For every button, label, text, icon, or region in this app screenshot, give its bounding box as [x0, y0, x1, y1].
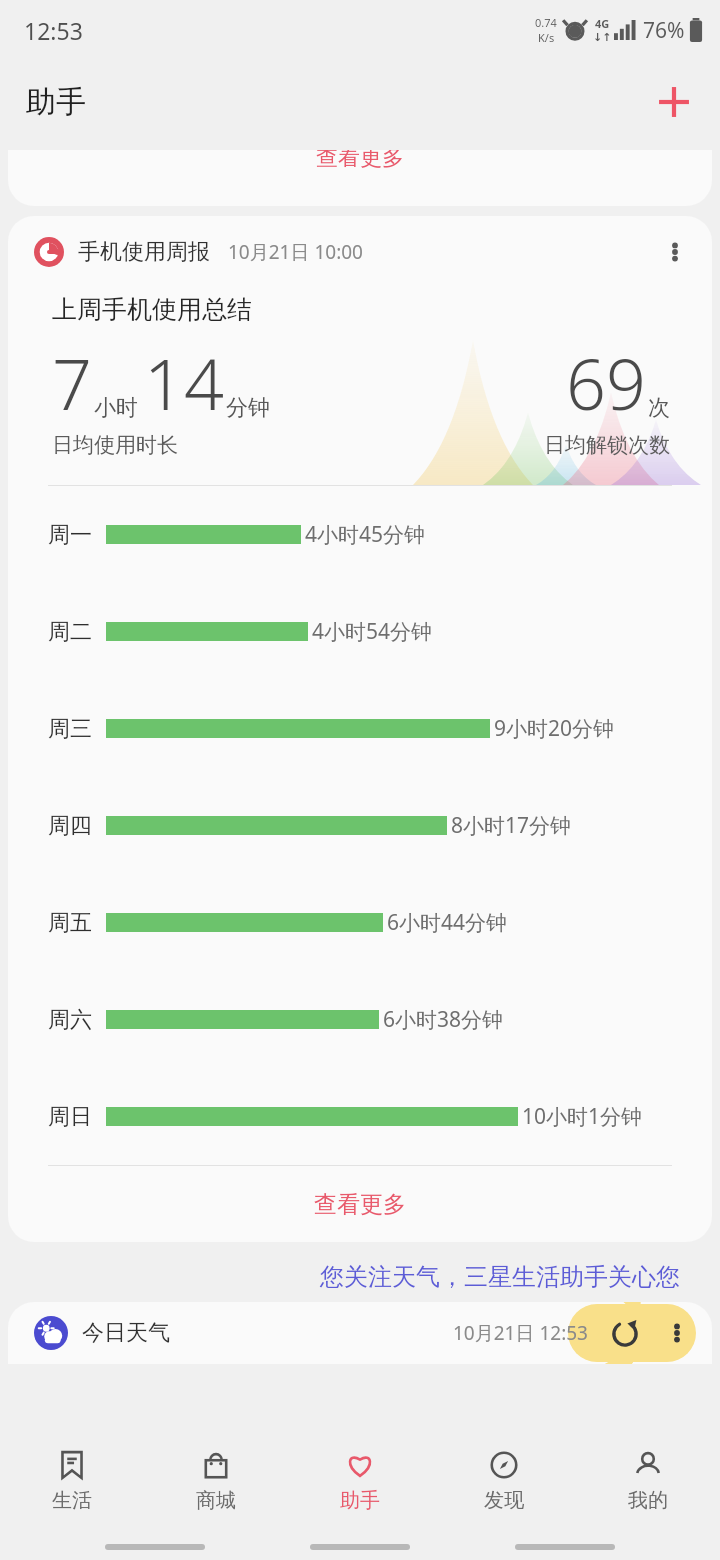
staticText: 发现	[484, 1488, 524, 1513]
button[interactable]: 您关注天气，三星生活助手关心您	[0, 1262, 720, 1292]
button[interactable]: 今日天气	[8, 1302, 712, 1364]
staticText: 上周手机使用总结	[52, 294, 252, 325]
staticText: 8小时17分钟	[451, 811, 572, 840]
staticText: 周四	[48, 812, 92, 840]
staticText: K/s	[538, 30, 555, 45]
button[interactable]: 发现	[432, 1426, 576, 1534]
staticText: 周六	[48, 1006, 92, 1034]
staticText: 12:53	[24, 15, 83, 46]
staticText: 周二	[48, 618, 92, 646]
button[interactable]: 生活	[0, 1426, 144, 1534]
staticText: 9小时20分钟	[494, 714, 615, 743]
button[interactable]: 助手	[288, 1426, 432, 1534]
staticText: 我的	[628, 1488, 668, 1513]
staticText: 日均使用时长	[52, 432, 178, 458]
staticText: 助手	[26, 83, 86, 121]
staticText: 69	[566, 335, 646, 430]
staticText: 周三	[48, 715, 92, 743]
button[interactable]: 更多选项	[652, 229, 698, 275]
button[interactable]: 添加	[650, 78, 698, 126]
staticText: 10小时1分钟	[522, 1102, 643, 1131]
staticText: 商城	[196, 1488, 236, 1513]
staticText: 10月21日 12:53	[453, 1320, 588, 1346]
button[interactable]: 我的	[576, 1426, 720, 1534]
staticText: 4G	[595, 16, 610, 31]
staticText: 76%	[643, 16, 685, 45]
button[interactable]: 手机使用周报	[8, 216, 712, 288]
staticText: 10月21日 10:00	[228, 239, 363, 265]
staticText: 日均解锁次数	[544, 432, 670, 458]
button[interactable]: 刷新	[602, 1310, 648, 1356]
staticText: 7	[52, 335, 92, 430]
staticText: 周日	[48, 1103, 92, 1131]
staticText: 您关注天气，三星生活助手关心您	[320, 1262, 680, 1292]
staticText: 小时	[94, 394, 138, 422]
staticText: 4小时45分钟	[305, 520, 426, 549]
staticText: 今日天气	[82, 1319, 170, 1347]
button[interactable]: 更多选项	[654, 1310, 700, 1356]
staticText: 周五	[48, 909, 92, 937]
staticText: 手机使用周报	[78, 238, 210, 266]
staticText: 6小时44分钟	[387, 908, 508, 937]
staticText: 次	[648, 394, 670, 422]
staticText: 分钟	[226, 394, 270, 422]
staticText: 14	[144, 335, 224, 430]
button[interactable]: 查看更多	[8, 150, 712, 206]
staticText: 查看更多	[314, 1190, 406, 1219]
staticText: 4小时54分钟	[312, 617, 433, 646]
staticText: 0.74	[535, 15, 557, 30]
staticText: 周一	[48, 521, 92, 549]
button[interactable]: 查看更多	[8, 1166, 712, 1242]
staticText: 6小时38分钟	[383, 1005, 504, 1034]
staticText: 查看更多	[316, 150, 404, 172]
staticText: 助手	[340, 1488, 380, 1513]
staticText: ↓↑	[593, 31, 612, 44]
button[interactable]: 商城	[144, 1426, 288, 1534]
staticText: 生活	[52, 1488, 92, 1513]
